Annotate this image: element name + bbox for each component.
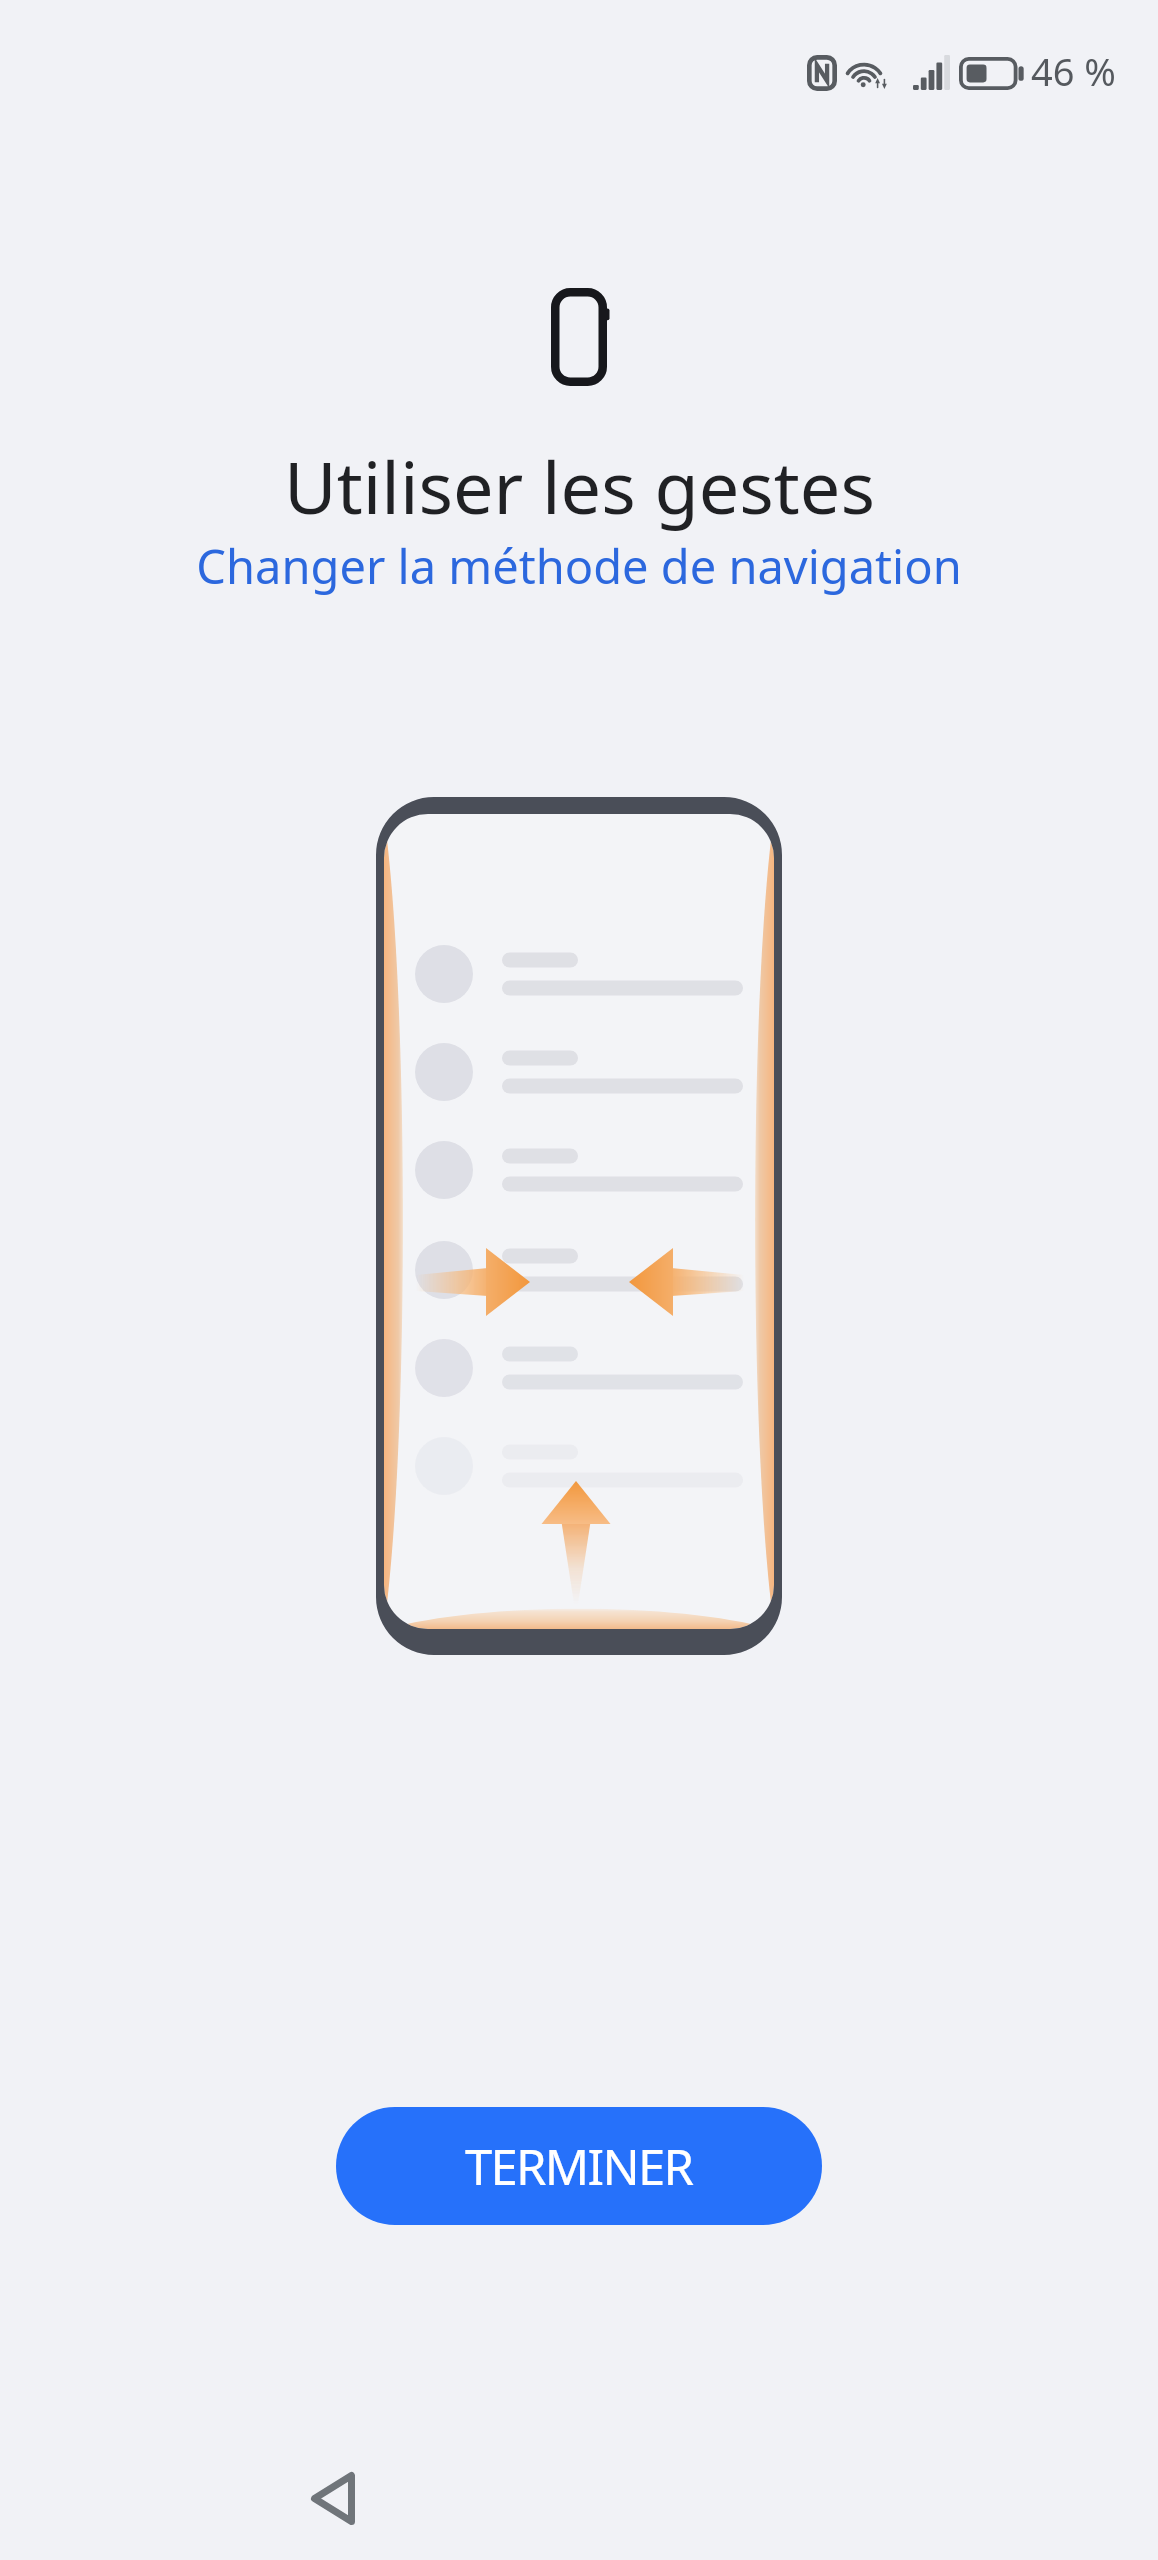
button[interactable]: TERMINER [336,2107,822,2225]
staticText: Changer la méthode de navigation [196,534,962,598]
button[interactable]: Changer la méthode de navigation [196,534,962,598]
staticText: Utiliser les gestes [284,437,875,535]
staticText: TERMINER [465,2133,693,2200]
button[interactable]: Back [274,2440,390,2556]
staticText: 46 % [1031,45,1116,97]
